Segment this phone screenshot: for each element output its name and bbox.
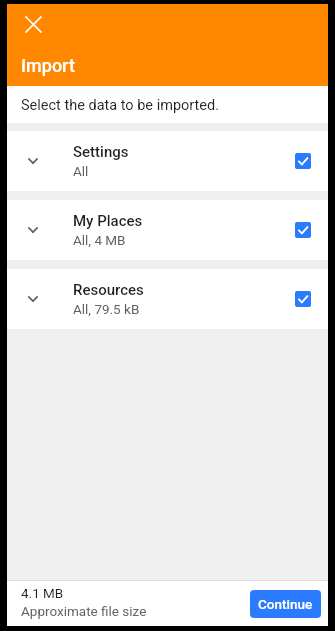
button[interactable]: Expand (7, 200, 328, 260)
button[interactable]: Selected (295, 222, 311, 238)
staticText: All (73, 163, 89, 179)
button[interactable]: Expand (7, 131, 328, 191)
button[interactable]: Close (15, 6, 51, 42)
other: Expand (7, 131, 58, 191)
button[interactable]: Expand (7, 269, 328, 329)
other: Expand (7, 200, 58, 260)
staticText: Settings (73, 143, 129, 161)
button[interactable]: Selected (295, 291, 311, 307)
staticText: 4.1 MB (21, 585, 64, 601)
staticText: Resources (73, 281, 144, 299)
other: Expand (7, 269, 58, 329)
staticText: Import (21, 55, 75, 76)
staticText: My Places (73, 212, 143, 230)
button[interactable]: Continue (250, 590, 321, 618)
staticText: All, 4 MB (73, 232, 126, 248)
button[interactable]: Selected (295, 153, 311, 169)
staticText: All, 79.5 kB (73, 301, 140, 317)
staticText: Approximate file size (21, 603, 147, 619)
staticText: Select the data to be imported. (21, 97, 220, 114)
staticText: Continue (258, 596, 313, 612)
